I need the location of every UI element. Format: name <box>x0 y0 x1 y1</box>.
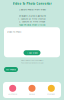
staticText: 1. Capture at Time Interval <box>18 17 46 20</box>
staticText: 2. Capture at Time Image <box>19 20 45 23</box>
button[interactable]: + Add Video <box>23 50 40 55</box>
button[interactable]: My Photos <box>4 67 18 72</box>
staticText: Take Photos From Video <box>19 23 45 26</box>
staticText: Video To Photo <box>7 30 21 33</box>
staticText: Rate Us <box>29 93 35 95</box>
staticText: My Photos <box>6 68 16 71</box>
staticText: Capture Photos From Video <box>18 8 45 11</box>
staticText: Select video from your gallery <box>20 59 43 62</box>
staticText: Premium <box>47 93 55 95</box>
staticText: + Add Video <box>26 51 37 54</box>
staticText: Video To Photo Converter <box>12 2 51 6</box>
staticText: Instant Auto Capture <box>18 14 45 17</box>
staticText: Photos in your device storage <box>20 62 43 64</box>
button[interactable]: Rate Us <box>22 85 42 95</box>
button[interactable]: My Photos <box>3 85 22 95</box>
button[interactable]: Premium <box>42 85 61 95</box>
staticText: My Photos <box>8 93 17 95</box>
